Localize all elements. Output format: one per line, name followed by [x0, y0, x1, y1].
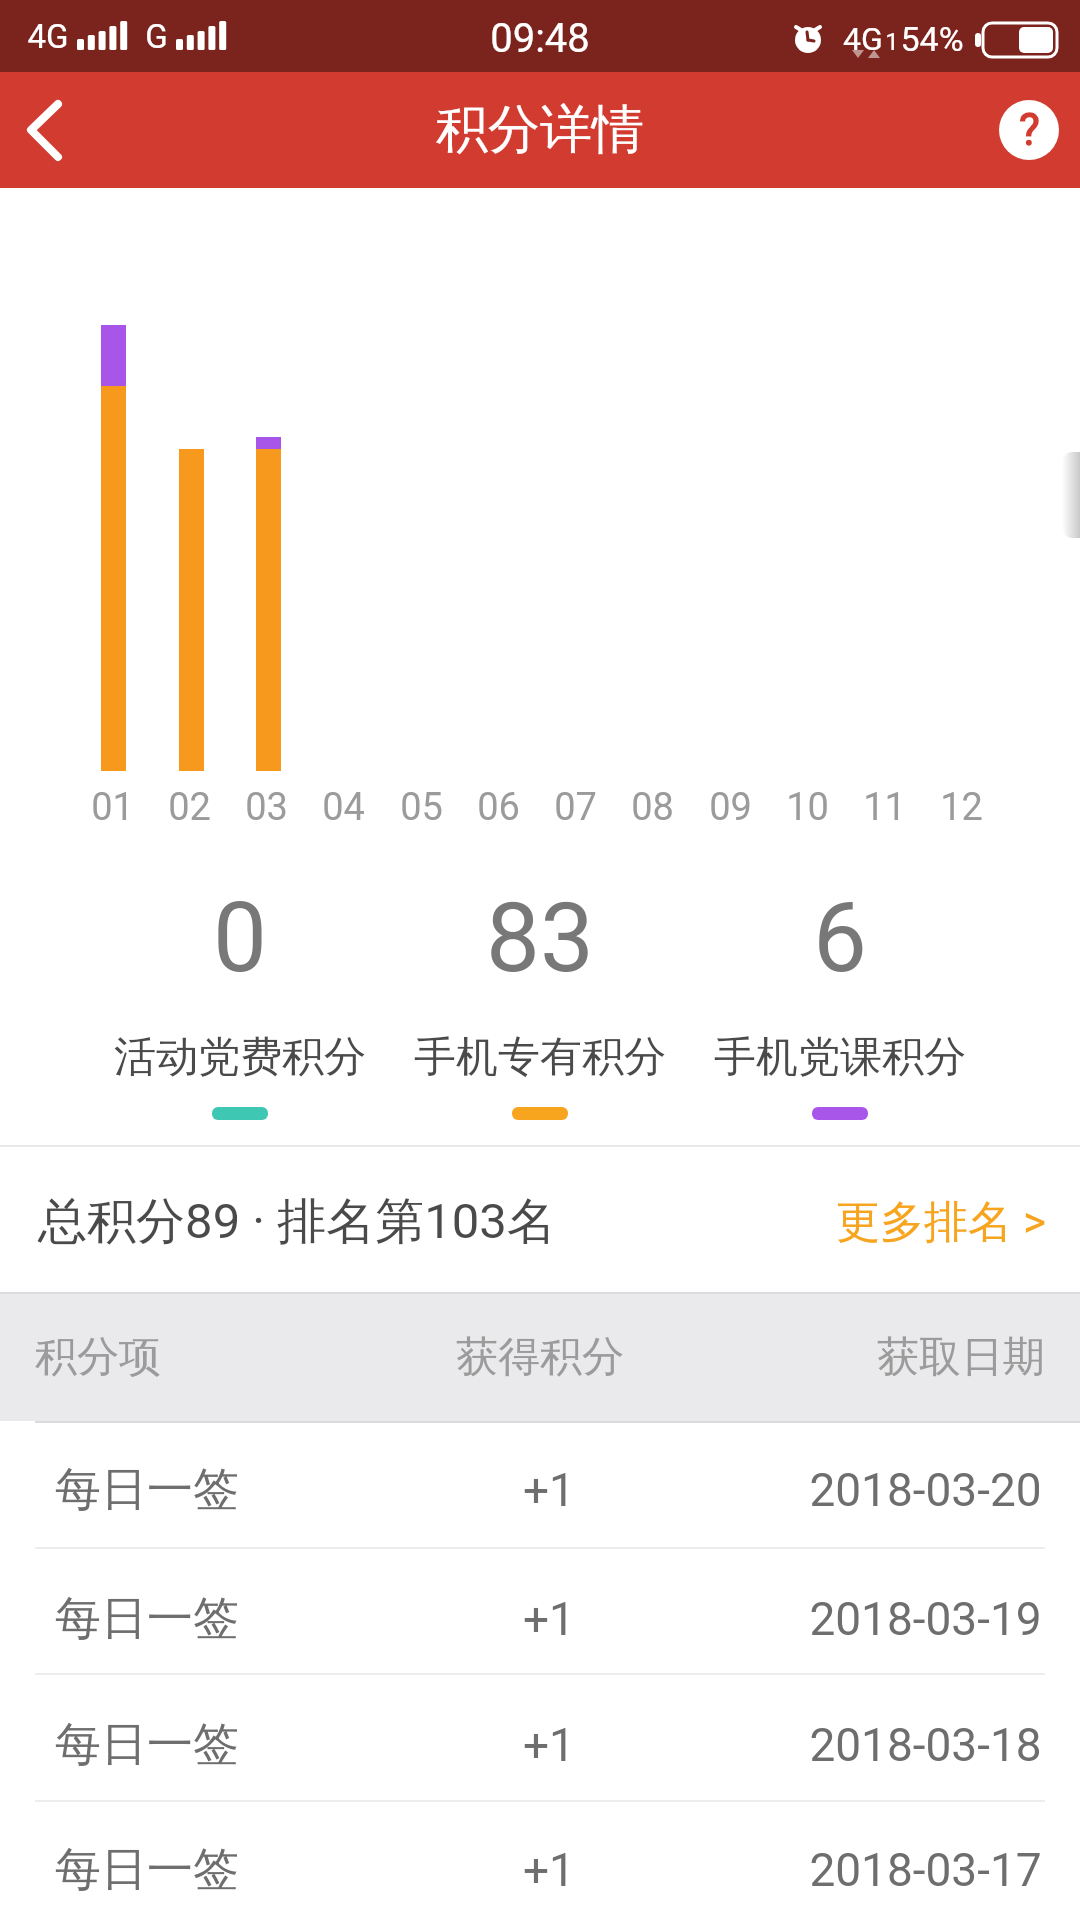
- staticText: 2018-03-17: [809, 1843, 1042, 1897]
- staticText: 11: [863, 785, 906, 830]
- staticText: 积分详情: [436, 97, 644, 163]
- button[interactable]: 每日一签: [0, 1682, 1080, 1808]
- staticText: 获得积分: [456, 1331, 624, 1384]
- staticText: 每日一签: [55, 1841, 239, 1899]
- staticText: 每日一签: [55, 1461, 239, 1519]
- staticText: 83: [486, 882, 594, 995]
- staticText: 2018-03-20: [809, 1463, 1042, 1517]
- button[interactable]: 总积分89 · 排名第103名: [38, 1147, 1046, 1297]
- staticText: +1: [523, 1463, 575, 1517]
- staticText: 03: [245, 785, 288, 830]
- staticText: 54%: [900, 19, 964, 59]
- staticText: 08: [631, 785, 674, 830]
- staticText: 0: [213, 882, 267, 995]
- staticText: 4G: [27, 17, 69, 56]
- staticText: 每日一签: [55, 1716, 239, 1774]
- button[interactable]: 每日一签: [0, 1807, 1080, 1920]
- staticText: 09: [709, 785, 752, 830]
- staticText: 2018-03-19: [809, 1592, 1042, 1646]
- staticText: 02: [168, 785, 211, 830]
- staticText: 手机专有积分: [414, 1031, 666, 1084]
- staticText: 6: [813, 882, 867, 995]
- button[interactable]: 每日一签: [0, 1427, 1080, 1553]
- staticText: ?: [1019, 104, 1040, 156]
- staticText: 4G: [843, 20, 883, 58]
- staticText: G: [145, 17, 168, 56]
- button[interactable]: ?: [999, 100, 1059, 160]
- button[interactable]: [10, 98, 80, 164]
- staticText: 10: [786, 785, 829, 830]
- button[interactable]: 每日一签: [0, 1556, 1080, 1682]
- staticText: 更多排名 >: [836, 1195, 1046, 1250]
- staticText: 05: [400, 785, 443, 830]
- staticText: +1: [523, 1592, 575, 1646]
- staticText: 04: [322, 785, 365, 830]
- staticText: 总积分89 · 排名第103名: [38, 1191, 556, 1253]
- staticText: 手机党课积分: [714, 1031, 966, 1084]
- staticText: 积分项: [35, 1331, 161, 1384]
- staticText: 09:48: [490, 15, 590, 62]
- staticText: 12: [940, 785, 983, 830]
- staticText: 1: [885, 28, 899, 56]
- staticText: 06: [477, 785, 520, 830]
- staticText: 07: [554, 785, 597, 830]
- staticText: 01: [91, 785, 134, 830]
- staticText: 获取日期: [877, 1331, 1045, 1384]
- staticText: +1: [523, 1718, 575, 1772]
- staticText: 活动党费积分: [114, 1031, 366, 1084]
- staticText: +1: [523, 1843, 575, 1897]
- staticText: 每日一签: [55, 1590, 239, 1648]
- staticText: 2018-03-18: [809, 1718, 1042, 1772]
